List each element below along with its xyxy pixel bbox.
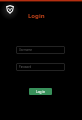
staticText: Login [28, 12, 45, 20]
staticText: Username [19, 48, 33, 52]
button[interactable]: Password [16, 63, 65, 71]
other: App logo [6, 5, 14, 14]
staticText: Log in [36, 90, 46, 94]
button[interactable]: Log in [29, 88, 52, 95]
staticText: Password [19, 65, 32, 69]
button[interactable]: Username [16, 46, 65, 54]
